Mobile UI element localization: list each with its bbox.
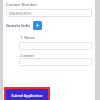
- button[interactable]: [19, 58, 92, 66]
- button[interactable]: Submit Application: [6, 89, 48, 100]
- staticText: 09849508015: [9, 11, 32, 16]
- button[interactable]: 09849508015: [6, 9, 92, 17]
- staticText: Contact: [20, 53, 35, 58]
- staticText: Contact Number: [6, 2, 38, 7]
- button[interactable]: Add guest: [33, 21, 42, 30]
- staticText: 1. Name: [20, 35, 36, 40]
- staticText: Guests Info: [6, 23, 30, 29]
- staticText: Submit Application: [11, 93, 43, 98]
- button[interactable]: [19, 42, 92, 50]
